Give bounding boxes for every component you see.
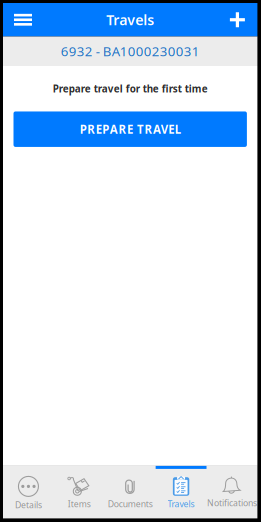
staticText: 6932 - BA1000230031 [61,42,200,60]
button[interactable]: Items [54,466,105,518]
staticText: Travels [106,10,154,29]
button[interactable]: Notifications [206,466,257,518]
button[interactable]: Documents [105,466,156,518]
button[interactable]: Details [3,466,54,518]
staticText: Notifications [207,497,257,509]
staticText: PREPARE TRAVEL [80,121,181,137]
staticText: Items [68,498,91,510]
button[interactable]: Menu [3,3,43,36]
staticText: Travels [168,498,195,510]
staticText: Documents [108,498,153,510]
button[interactable]: PREPARE TRAVEL [13,111,247,147]
staticText: Details [15,499,42,511]
staticText: Prepare travel for the first time [53,82,208,95]
button[interactable]: 6932 - BA1000230031 [3,36,257,66]
button[interactable]: Travels [156,466,206,518]
button[interactable]: Add [217,3,257,36]
